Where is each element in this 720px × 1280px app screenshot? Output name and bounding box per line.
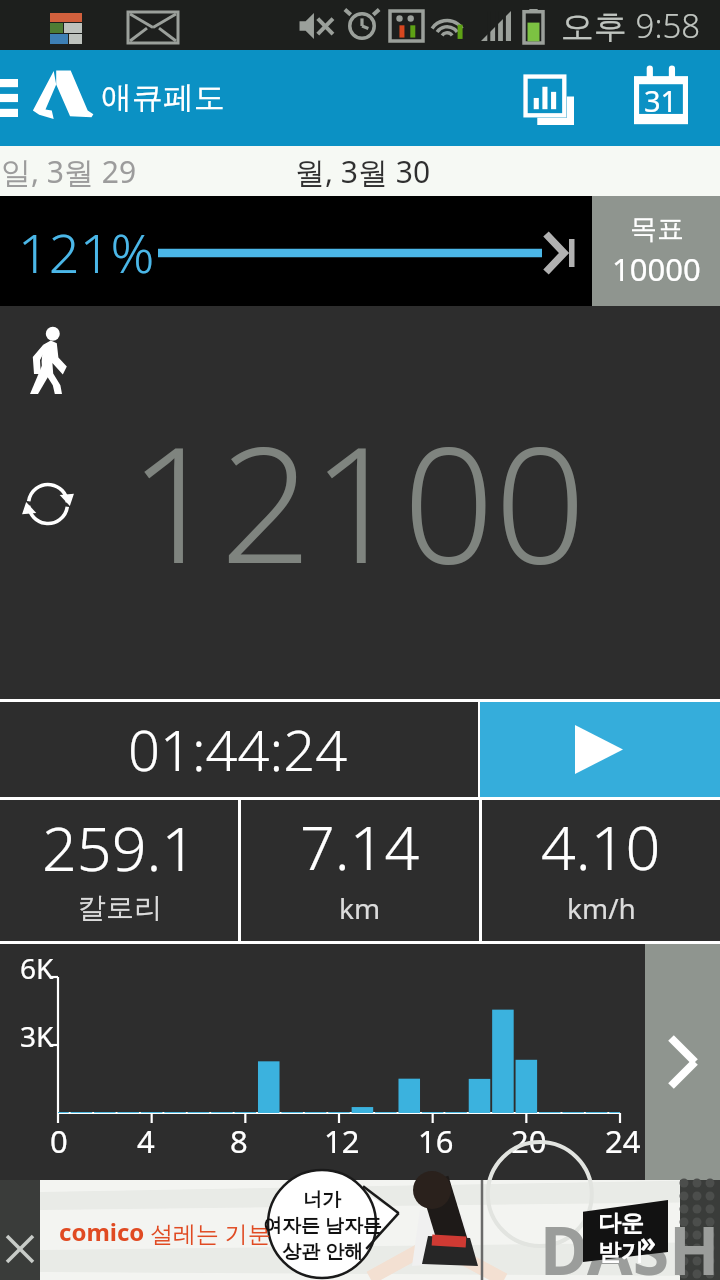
staticText: 24	[605, 1120, 641, 1162]
staticText: 3K	[20, 1017, 54, 1055]
staticText: 8	[230, 1120, 248, 1162]
staticText: 31	[644, 81, 678, 120]
staticText: 6K	[20, 949, 54, 987]
staticText: 16	[418, 1120, 454, 1162]
staticText: km	[339, 889, 381, 927]
button[interactable]: 7.14	[241, 800, 479, 941]
button[interactable]: 6K	[0, 944, 645, 1180]
staticText: 애큐페도	[101, 78, 225, 117]
staticText: 121%	[18, 215, 155, 289]
staticText: 칼로리	[78, 890, 162, 925]
button[interactable]: DASHIN	[40, 1180, 720, 1280]
staticText: 4	[137, 1120, 155, 1162]
staticText: 다운	[598, 1209, 644, 1238]
button[interactable]: 일, 3월 29	[0, 146, 288, 196]
staticText: 01:44:24	[128, 711, 348, 787]
staticText: km/h	[567, 889, 636, 927]
button[interactable]: Next day	[645, 944, 720, 1180]
button[interactable]: Start	[480, 702, 720, 797]
staticText: 일, 3월 29	[1, 151, 137, 192]
staticText: 259.1	[42, 806, 197, 889]
button[interactable]: Statistics	[500, 51, 596, 147]
staticText: 설레는 기분	[150, 1217, 271, 1248]
staticText: 월, 3월 30	[295, 151, 431, 192]
staticText: 20	[511, 1120, 547, 1162]
staticText: comico	[59, 1215, 145, 1248]
staticText: 상관 안해	[282, 1238, 363, 1264]
button[interactable]: 월, 3월 30	[288, 146, 720, 196]
staticText: »	[640, 1224, 656, 1259]
staticText: 목표	[630, 212, 684, 246]
staticText: 7.14	[300, 805, 420, 888]
staticText: 0	[50, 1120, 68, 1162]
staticText: 12	[324, 1120, 360, 1162]
button[interactable]: Close ad	[0, 1180, 40, 1280]
button[interactable]: 4.10	[482, 800, 720, 941]
button[interactable]: Open navigation drawer	[0, 50, 720, 146]
staticText: 여자든 남자든	[263, 1212, 382, 1238]
staticText: 10000	[612, 248, 701, 290]
staticText: 받기	[598, 1238, 644, 1267]
button[interactable]: 259.1	[0, 800, 238, 941]
staticText: 오후 9:58	[561, 3, 701, 48]
staticText: 4.10	[541, 805, 661, 888]
staticText: 너가	[303, 1188, 341, 1212]
button[interactable]: Calendar	[613, 50, 709, 146]
button[interactable]: 목표	[592, 196, 720, 306]
staticText: DASHIN	[540, 1204, 720, 1280]
button[interactable]: 01:44:24	[0, 702, 478, 797]
staticText: 12100	[129, 392, 586, 610]
